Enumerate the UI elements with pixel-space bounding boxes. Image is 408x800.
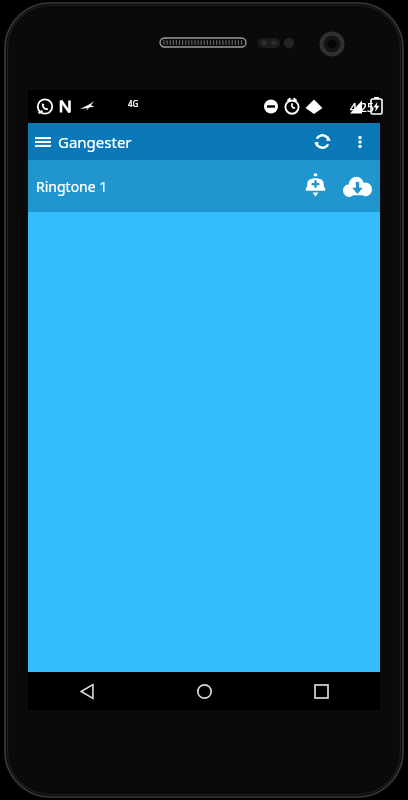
- button[interactable]: Refresh: [304, 123, 341, 160]
- button[interactable]: Recent apps: [263, 672, 380, 710]
- staticText: Gangester: [58, 132, 132, 152]
- button[interactable]: Ringtone 1: [28, 160, 380, 212]
- staticText: Ringtone 1: [36, 177, 294, 196]
- other: Open navigation drawer: [36, 135, 50, 149]
- button[interactable]: Open navigation drawer: [28, 123, 304, 160]
- button[interactable]: Download: [336, 165, 378, 207]
- staticText: 4G: [128, 98, 139, 109]
- button[interactable]: Set as ringtone: [294, 165, 336, 207]
- staticText: 4:25: [350, 99, 374, 115]
- button[interactable]: Back: [28, 672, 146, 710]
- button[interactable]: Home: [146, 672, 263, 710]
- button[interactable]: More options: [341, 123, 378, 160]
